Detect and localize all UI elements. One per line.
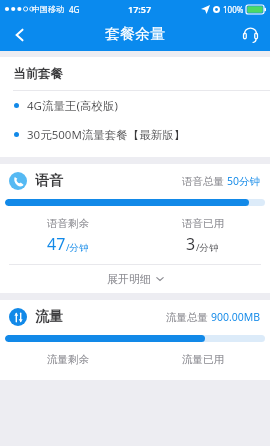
button[interactable]: 30元500M流量套餐【最新版】 bbox=[0, 120, 270, 149]
staticText: /分钟 bbox=[196, 241, 219, 254]
staticText: 900.00MB bbox=[211, 310, 261, 324]
staticText: 语音已用 bbox=[182, 217, 224, 230]
staticText: 47 bbox=[47, 233, 66, 255]
staticText: 语音剩余 bbox=[47, 217, 89, 230]
button[interactable]: Customer service bbox=[230, 18, 270, 51]
staticText: 100% bbox=[223, 4, 244, 15]
staticText: 17:57 bbox=[128, 3, 152, 15]
staticText: 流量总量 bbox=[166, 310, 211, 324]
staticText: 语音总量 bbox=[182, 174, 227, 188]
button[interactable]: 4G流量王(高校版) bbox=[0, 91, 270, 120]
staticText: 流量已用 bbox=[182, 353, 224, 366]
staticText: /分钟 bbox=[66, 241, 89, 254]
staticText: 4G流量王(高校版) bbox=[27, 98, 118, 114]
staticText: 当前套餐 bbox=[13, 66, 63, 82]
staticText: 30元500M流量套餐【最新版】 bbox=[27, 127, 186, 143]
staticText: 套餐余量 bbox=[105, 25, 165, 44]
staticText: 3 bbox=[186, 233, 196, 255]
staticText: 展开明细 bbox=[107, 272, 151, 286]
staticText: 语音 bbox=[35, 172, 63, 190]
staticText: 50分钟 bbox=[227, 174, 261, 188]
staticText: 中国移动 bbox=[32, 4, 64, 14]
button[interactable]: Back bbox=[0, 18, 40, 51]
staticText: 流量 bbox=[35, 308, 63, 326]
staticText: 流量剩余 bbox=[47, 353, 89, 366]
button[interactable]: 展开明细 bbox=[0, 265, 270, 293]
staticText: 4G bbox=[69, 4, 80, 15]
